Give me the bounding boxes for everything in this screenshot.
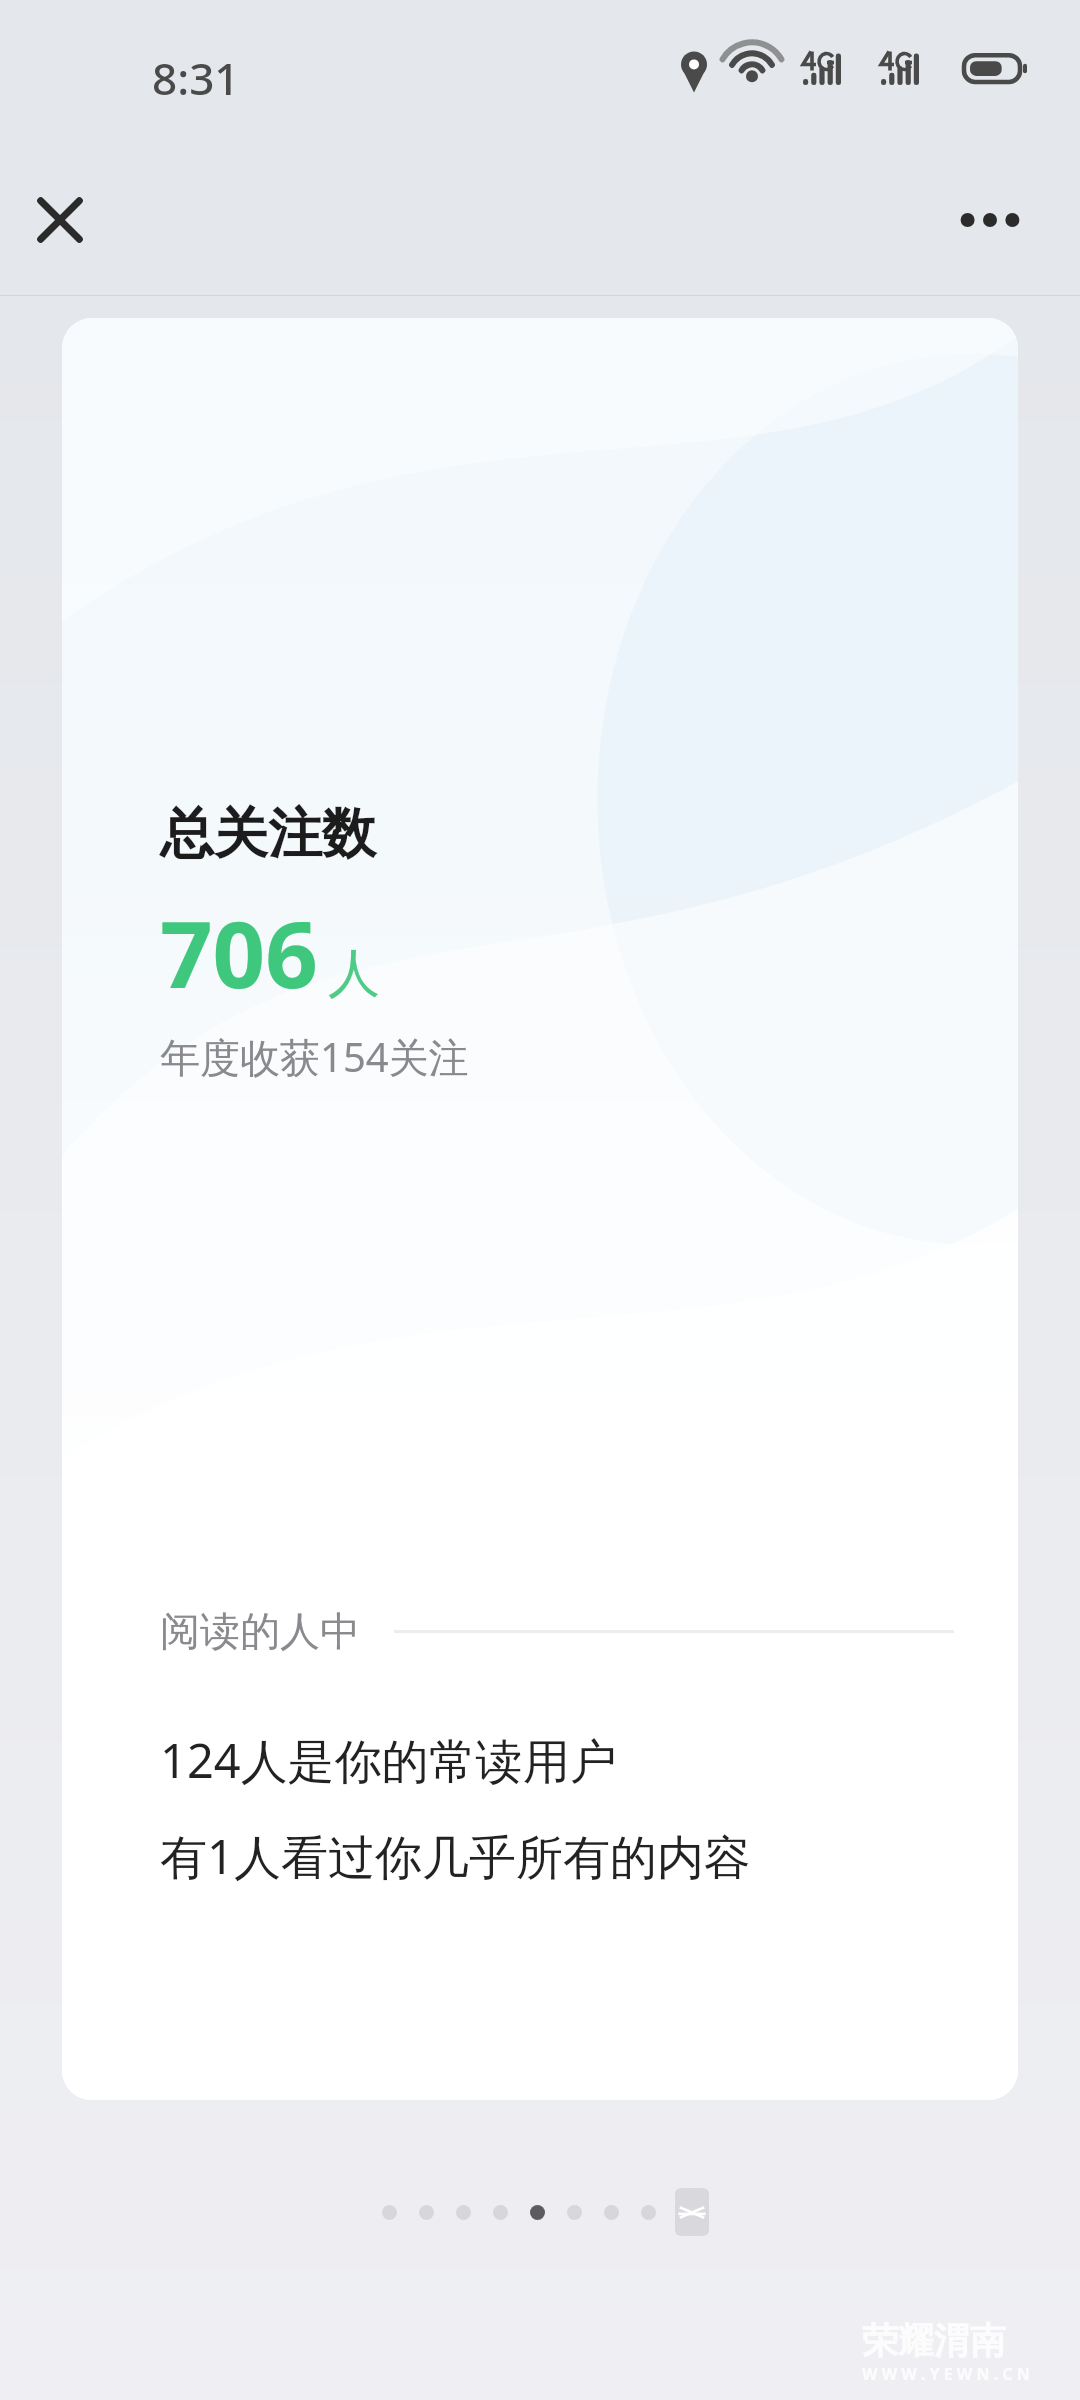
staticText: 有1人看过你几乎所有的内容 (160, 1824, 751, 1888)
button[interactable]: Page 6 (567, 2205, 582, 2220)
staticText: 8:31 (152, 48, 240, 108)
button[interactable]: Close (20, 180, 100, 260)
staticText: 总关注数 (160, 800, 376, 868)
button[interactable]: 总关注数 (62, 318, 1018, 2100)
button[interactable]: More options (940, 180, 1040, 260)
button[interactable]: Page 8 (641, 2205, 656, 2220)
button[interactable]: Page 5 (530, 2205, 545, 2220)
staticText: 人 (328, 941, 380, 1007)
staticText: 706 (160, 890, 318, 1015)
staticText: 124人是你的常读用户 (160, 1728, 617, 1792)
button[interactable]: Gift (675, 2188, 709, 2236)
staticText: 荣耀渭南 (862, 2318, 1006, 2363)
button[interactable]: Page 1 (382, 2205, 397, 2220)
button[interactable]: Page 7 (604, 2205, 619, 2220)
button[interactable]: Page 2 (419, 2205, 434, 2220)
staticText: 年度收获154关注 (160, 1029, 469, 1084)
staticText: W W W . Y E W N . C N (862, 2363, 1030, 2385)
button[interactable]: Page 4 (493, 2205, 508, 2220)
staticText: 阅读的人中 (160, 1606, 360, 1656)
button[interactable]: Page 3 (456, 2205, 471, 2220)
